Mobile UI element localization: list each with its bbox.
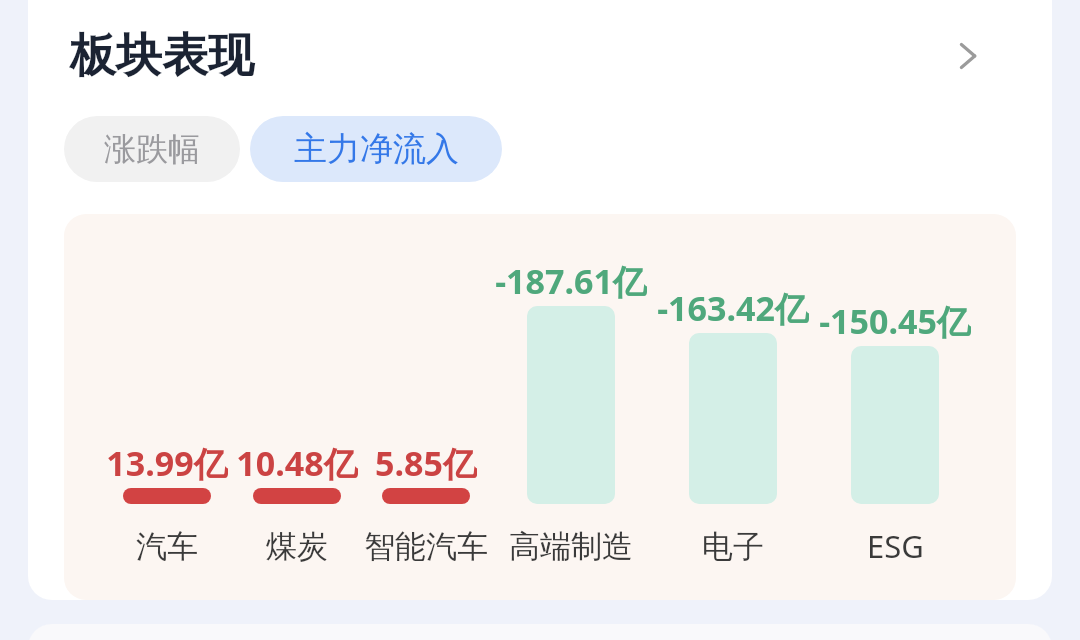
staticText: 涨跌幅 [104, 129, 200, 169]
staticText: 10.48亿 [236, 440, 358, 484]
staticText: 高端制造 [509, 527, 633, 566]
button[interactable]: 涨跌幅 [64, 116, 240, 182]
staticText: 智能汽车 [364, 527, 488, 566]
other: 查看更多 [950, 34, 994, 78]
staticText: 板块表现 [70, 27, 254, 85]
staticText: 13.99亿 [106, 440, 228, 484]
staticText: 5.85亿 [375, 440, 477, 484]
staticText: 电子 [702, 527, 764, 566]
button[interactable] [64, 214, 1016, 600]
button[interactable]: 板块表现 [64, 0, 1016, 110]
staticText: 主力净流入 [294, 128, 459, 170]
staticText: -163.42亿 [657, 285, 809, 329]
staticText: -187.61亿 [495, 258, 647, 302]
staticText: 汽车 [136, 527, 198, 566]
button[interactable]: 主力净流入 [250, 116, 502, 182]
staticText: -150.45亿 [819, 298, 971, 342]
staticText: 煤炭 [266, 527, 328, 566]
staticText: ESG [867, 525, 924, 567]
